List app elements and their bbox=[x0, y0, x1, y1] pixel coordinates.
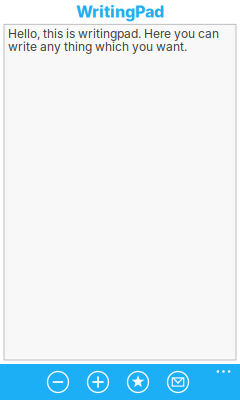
button[interactable]: More options bbox=[207, 364, 240, 379]
button[interactable]: Add to favourites bbox=[122, 366, 154, 398]
staticText: WritingPad bbox=[76, 2, 164, 21]
button[interactable]: Decrease text size bbox=[42, 366, 74, 398]
staticText: Hello, this is writingpad. Here you can … bbox=[8, 26, 219, 54]
button[interactable]: Send by mail bbox=[162, 366, 194, 398]
button[interactable]: Hello, this is writingpad. Here you can … bbox=[4, 24, 236, 360]
button[interactable]: Increase text size bbox=[82, 366, 114, 398]
